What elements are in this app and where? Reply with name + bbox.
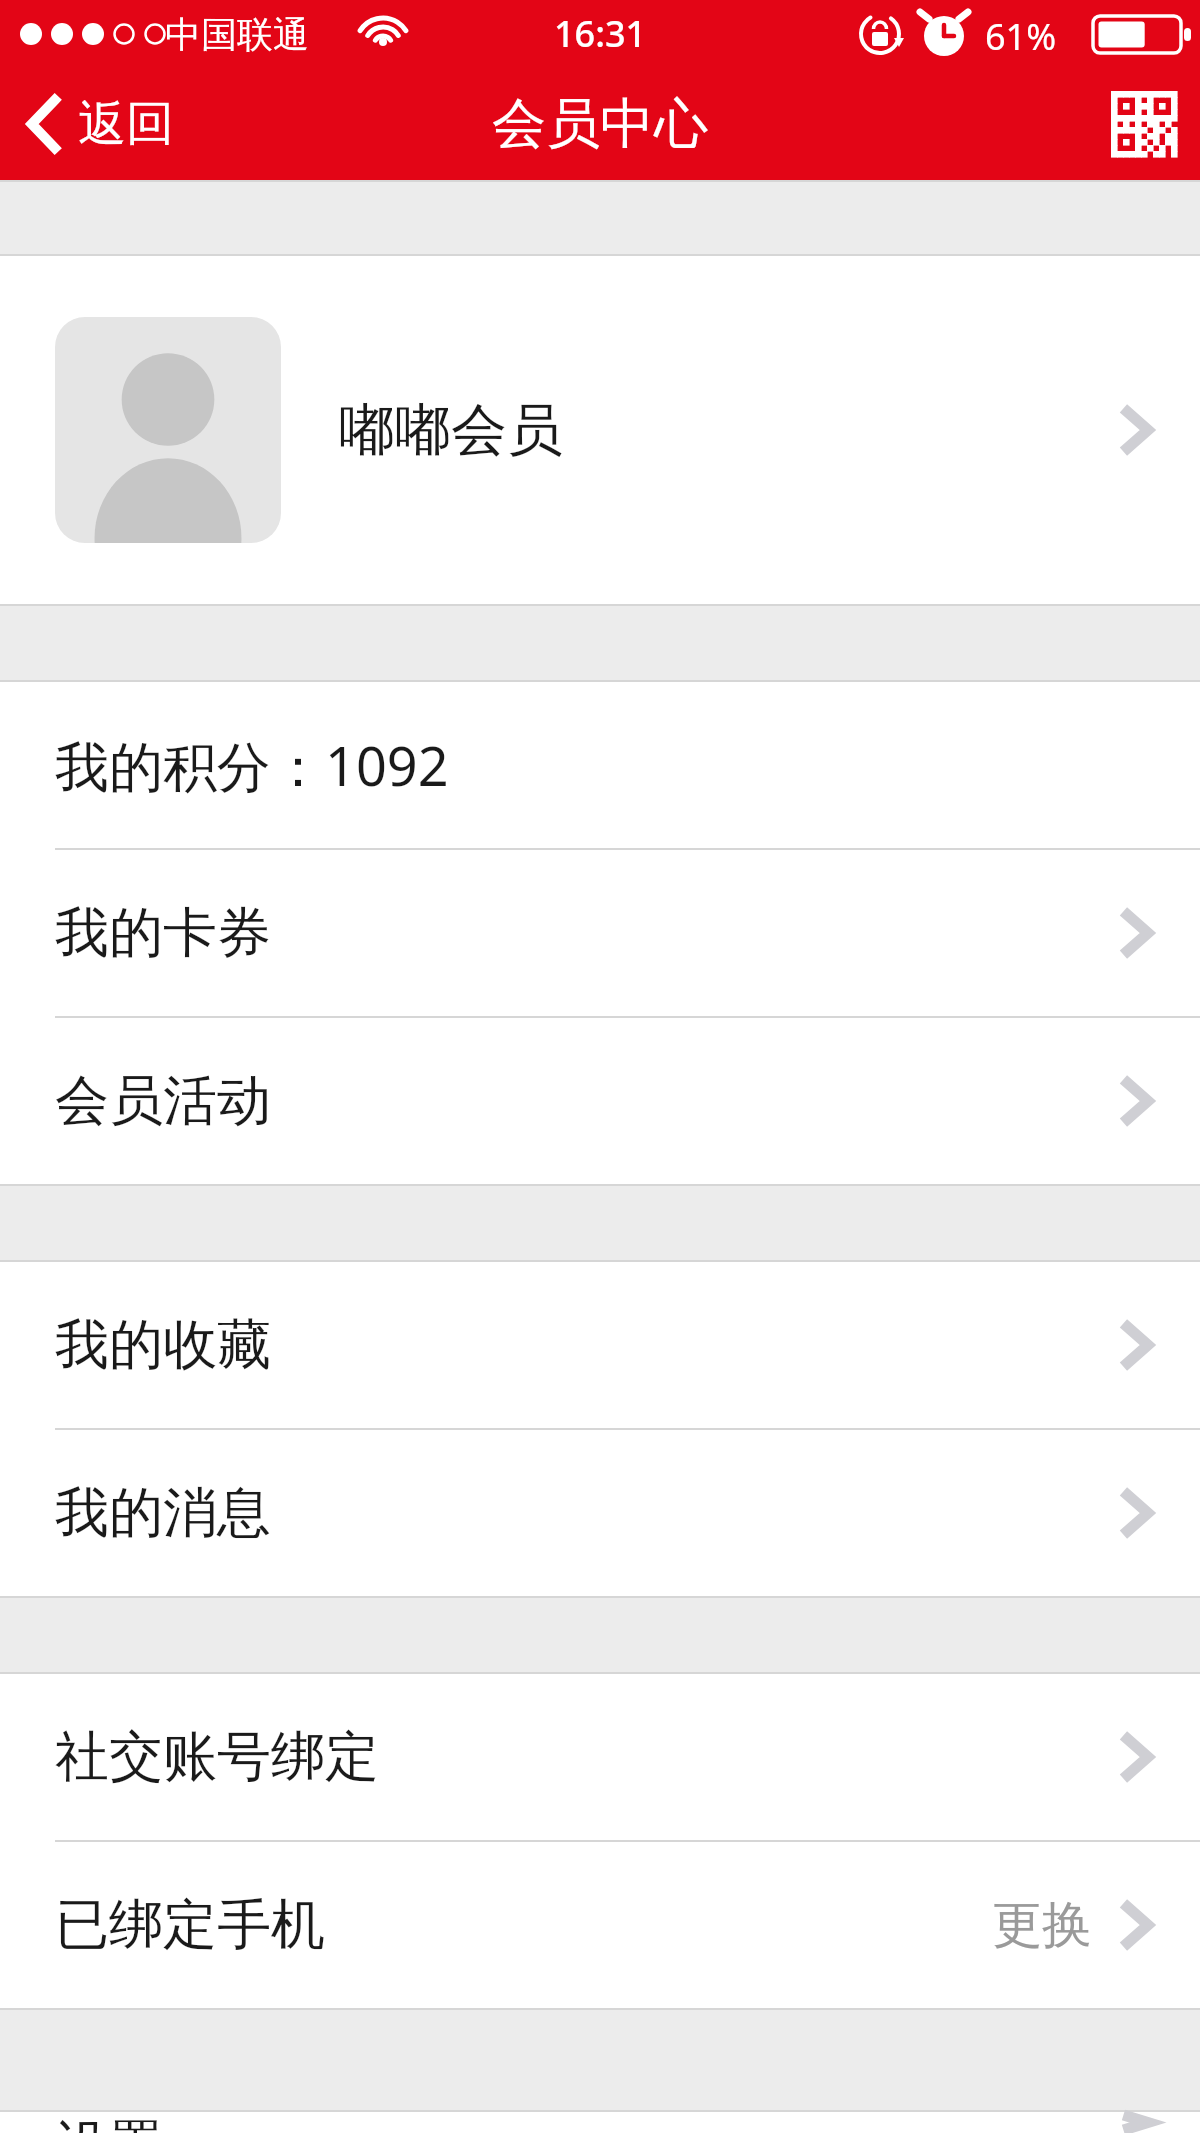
staticText: 更换 [992,1894,1092,1957]
staticText: 已绑定手机 [55,1891,325,1959]
button[interactable]: 已绑定手机 [0,1842,1200,2008]
button[interactable]: 设置 [0,2112,1200,2133]
staticText: 我的消息 [55,1479,271,1547]
button[interactable]: 扫描二维码 [1088,68,1200,180]
staticText: 我的积分：1092 [55,728,449,802]
button[interactable]: 我的卡券 [0,850,1200,1016]
staticText: 会员活动 [55,1067,271,1135]
button[interactable]: 会员活动 [0,1018,1200,1184]
button[interactable]: 返回 [0,68,200,180]
button[interactable]: 我的积分：1092 [0,682,1200,848]
staticText: 我的收藏 [55,1311,271,1379]
staticText: 61% [985,12,1057,61]
button[interactable]: 我的消息 [0,1430,1200,1596]
button[interactable]: 我的收藏 [0,1262,1200,1428]
staticText: 设置 [55,2112,163,2133]
staticText: 中国联通 [165,12,309,57]
staticText: 嘟嘟会员 [339,395,563,466]
staticText: 我的卡券 [55,899,271,967]
button[interactable]: 嘟嘟会员 [0,256,1200,604]
staticText: 返回 [78,94,174,154]
staticText: 会员中心 [492,90,708,158]
staticText: 社交账号绑定 [55,1723,379,1791]
button[interactable]: 社交账号绑定 [0,1674,1200,1840]
staticText: 16:31 [554,9,647,58]
